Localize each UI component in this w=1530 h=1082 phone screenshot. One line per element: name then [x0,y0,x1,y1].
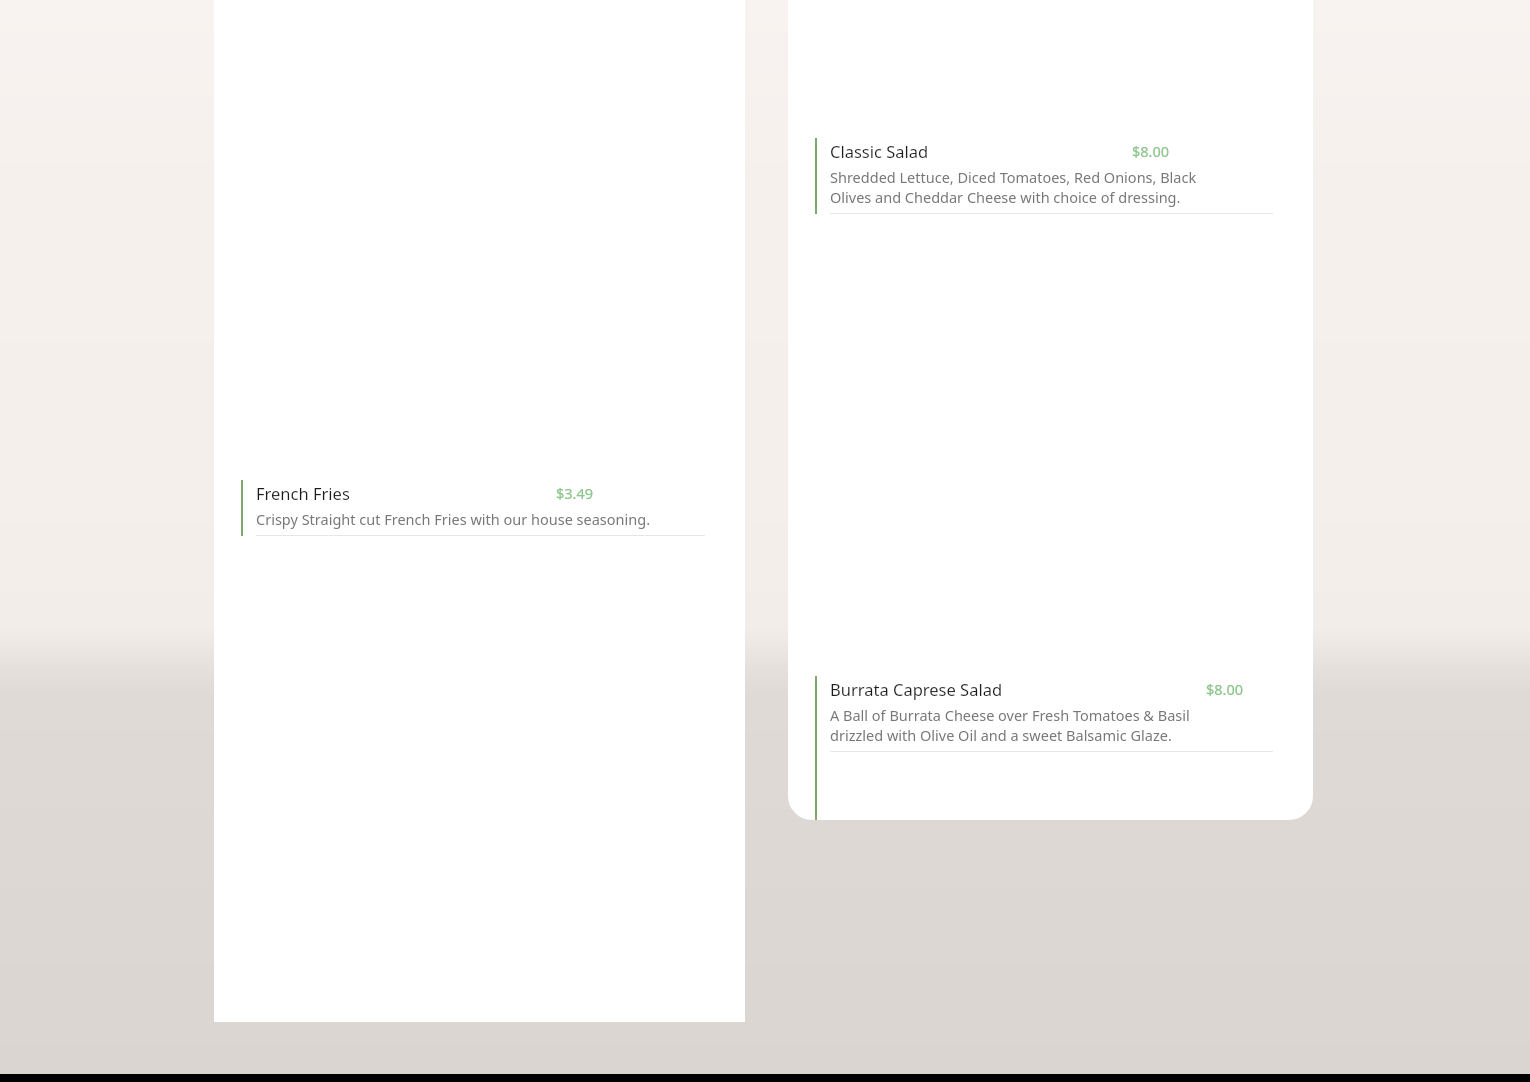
staticText: $8.00 [1132,141,1170,161]
staticText: Shredded Lettuce, Diced Tomatoes, Red On… [830,167,1229,207]
staticText: A Ball of Burrata Cheese over Fresh Toma… [830,705,1229,745]
staticText: French Fries [256,482,350,504]
staticText: Burrata Caprese Salad [830,678,1003,700]
staticText: Crispy Straight cut French Fries with ou… [256,509,660,529]
staticText: $8.00 [1206,679,1244,699]
staticText: $3.49 [556,483,594,503]
button[interactable]: French Fries [214,480,745,535]
button[interactable]: Burrata Caprese Salad [788,676,1313,751]
staticText: Classic Salad [830,140,929,162]
button[interactable]: Classic Salad [788,138,1313,213]
